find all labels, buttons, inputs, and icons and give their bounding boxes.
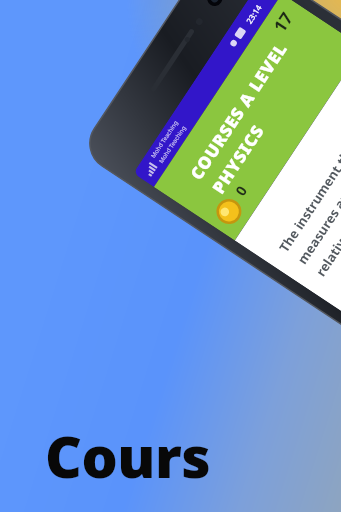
button[interactable]: Cours app promotional screenshot <box>0 0 341 512</box>
